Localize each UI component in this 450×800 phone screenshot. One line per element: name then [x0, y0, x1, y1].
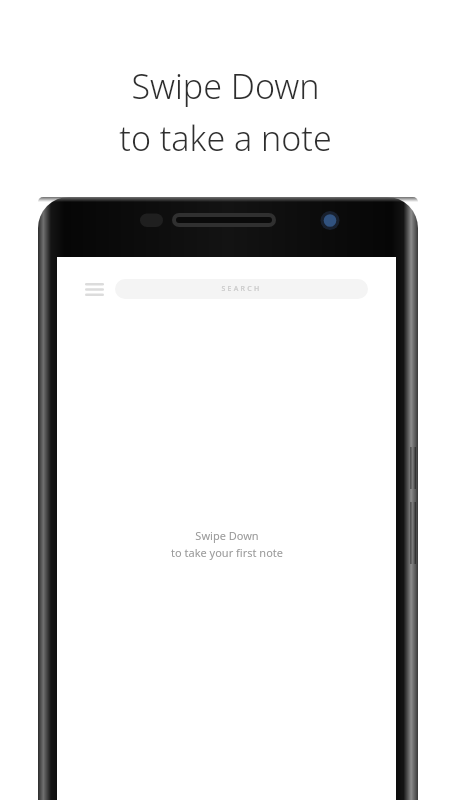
staticText: Swipe Down — [131, 63, 320, 109]
button[interactable]: SEARCH — [115, 279, 368, 299]
staticText: to take your first note — [171, 545, 283, 560]
staticText: Swipe Down — [195, 528, 259, 543]
staticText: to take a note — [119, 115, 332, 161]
button[interactable]: Open navigation menu — [81, 277, 107, 301]
staticText: SEARCH — [221, 284, 262, 294]
